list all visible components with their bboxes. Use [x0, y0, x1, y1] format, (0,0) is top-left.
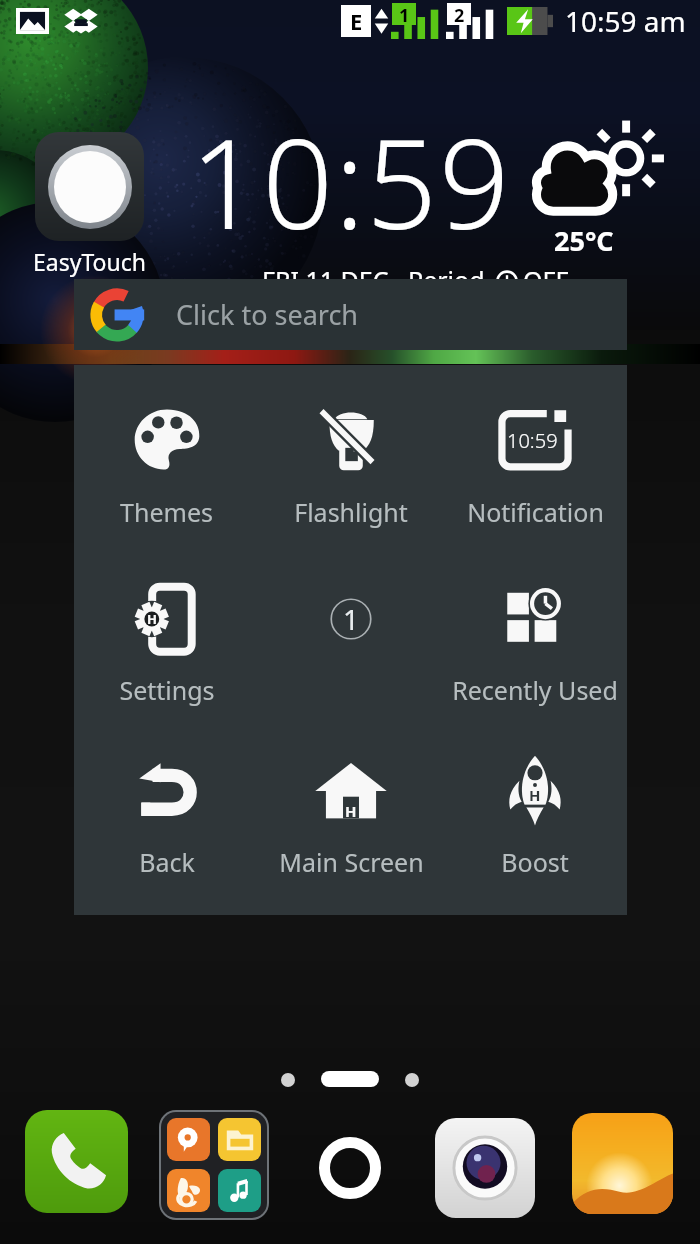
staticText: Notification	[467, 495, 604, 529]
staticText: 1	[343, 600, 360, 638]
staticText: FRI 11 DEC Period	[262, 263, 485, 297]
staticText: 2	[454, 3, 465, 25]
button[interactable]: Boost	[443, 753, 627, 879]
staticText: 25°C	[554, 222, 614, 259]
staticText: EasyTouch	[33, 246, 146, 277]
button[interactable]: Notification	[443, 403, 627, 529]
button[interactable]: EasyTouch	[18, 132, 160, 277]
staticText: E	[350, 6, 363, 36]
button[interactable]: Click to search	[74, 279, 627, 350]
staticText: Recently Used	[452, 673, 618, 707]
staticText: 1	[399, 3, 410, 25]
staticText: H	[345, 801, 357, 821]
button[interactable]: Themes	[74, 403, 259, 529]
button[interactable]: Phone	[25, 1110, 128, 1213]
button[interactable]: App drawer	[296, 1114, 404, 1222]
staticText: OFF	[523, 263, 569, 297]
button[interactable]: Camera	[435, 1118, 535, 1218]
staticText: Main Screen	[279, 845, 424, 879]
button[interactable]: Back	[74, 753, 259, 879]
button[interactable]: Folder	[161, 1112, 267, 1218]
button[interactable]: Flashlight	[259, 403, 443, 529]
staticText: Click to search	[176, 296, 359, 333]
button[interactable]: Settings	[74, 581, 259, 707]
staticText: Back	[139, 845, 195, 879]
button[interactable]: Recently Used	[443, 581, 627, 707]
button[interactable]: Main Screen	[259, 753, 443, 879]
staticText: Themes	[120, 495, 213, 529]
staticText: Flashlight	[294, 495, 408, 529]
button[interactable]: Gallery	[572, 1113, 673, 1214]
staticText: 10:59	[507, 427, 558, 454]
staticText: Boost	[501, 845, 569, 879]
staticText: H	[529, 785, 541, 805]
staticText: 10:59	[190, 96, 511, 265]
button[interactable]: Page 1	[259, 581, 443, 657]
staticText: H	[147, 610, 157, 628]
staticText: 10:59 am	[565, 2, 686, 40]
staticText: Settings	[119, 673, 215, 707]
